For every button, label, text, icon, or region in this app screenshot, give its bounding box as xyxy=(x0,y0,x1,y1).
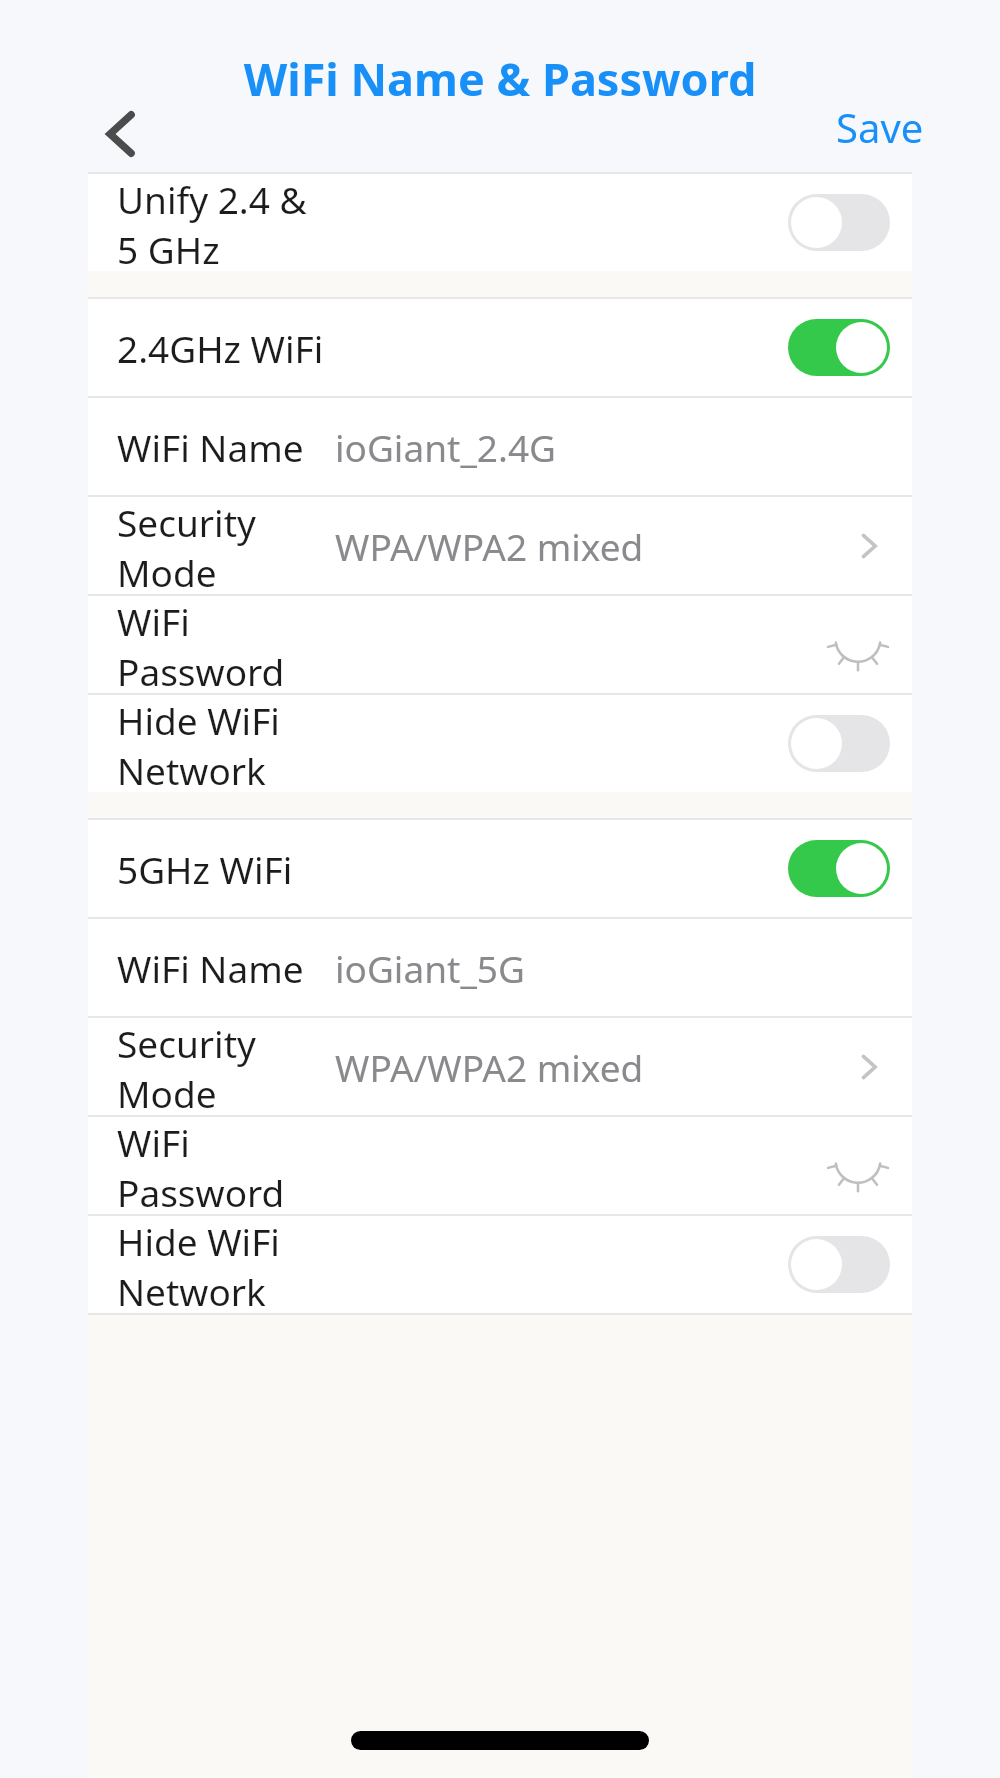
button[interactable]: Hide WiFi Network xyxy=(88,1216,912,1313)
button[interactable]: WiFi Password xyxy=(88,1117,912,1214)
button[interactable]: 5GHz WiFi xyxy=(88,820,912,917)
staticText: WPA/WPA2 mixed xyxy=(335,521,644,571)
button[interactable]: Show password xyxy=(826,1134,890,1198)
button[interactable]: On xyxy=(788,319,890,376)
staticText: WiFi Password xyxy=(117,596,335,693)
staticText: Unify 2.4 & 5 GHz xyxy=(117,174,335,271)
button[interactable]: Hide WiFi Network xyxy=(88,695,912,792)
staticText: ioGiant_5G xyxy=(335,943,525,993)
staticText: Security Mode xyxy=(117,1018,335,1115)
button[interactable]: Security Mode xyxy=(88,497,912,594)
button[interactable]: Off xyxy=(788,1236,890,1293)
button[interactable]: Unify 2.4 & 5 GHz xyxy=(88,174,912,271)
button[interactable]: Show password xyxy=(826,613,890,677)
button[interactable]: Security Mode xyxy=(88,1018,912,1115)
button[interactable]: Save xyxy=(836,100,924,154)
staticText: ioGiant_2.4G xyxy=(335,422,557,472)
staticText: WiFi Name & Password xyxy=(0,48,1000,109)
button[interactable]: Back xyxy=(80,95,164,172)
staticText: WiFi Name xyxy=(117,422,304,472)
staticText: Save xyxy=(836,100,924,154)
staticText: Security Mode xyxy=(117,497,335,594)
staticText: Hide WiFi Network xyxy=(117,1216,335,1313)
staticText: WPA/WPA2 mixed xyxy=(335,1042,644,1092)
button[interactable]: WiFi Name xyxy=(88,398,912,495)
button[interactable]: On xyxy=(788,840,890,897)
staticText: Hide WiFi Network xyxy=(117,695,335,792)
button[interactable]: Off xyxy=(788,715,890,772)
button[interactable]: WiFi Password xyxy=(88,596,912,693)
staticText: 2.4GHz WiFi xyxy=(117,323,324,373)
staticText: WiFi Password xyxy=(117,1117,335,1214)
staticText: WiFi Name xyxy=(117,943,304,993)
button[interactable]: WiFi Name xyxy=(88,919,912,1016)
button[interactable]: Off xyxy=(788,194,890,251)
button[interactable]: 2.4GHz WiFi xyxy=(88,299,912,396)
staticText: 5GHz WiFi xyxy=(117,844,293,894)
